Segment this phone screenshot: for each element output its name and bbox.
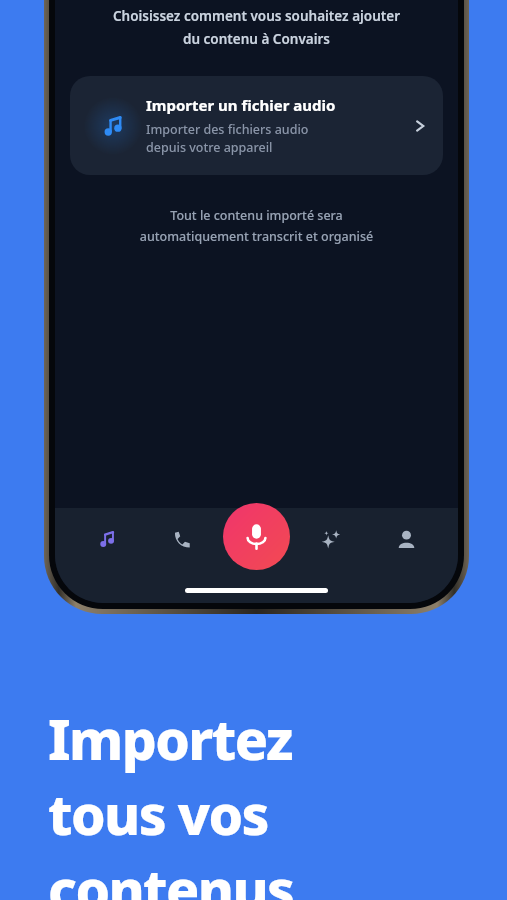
button[interactable]: Importer un fichier audio	[70, 76, 443, 175]
button[interactable]: Calls	[159, 516, 205, 562]
staticText: tous vos	[48, 776, 268, 851]
staticText: contenus	[48, 851, 294, 900]
staticText: Choisissez comment vous souhaitez ajoute…	[65, 7, 448, 48]
staticText: Tout le contenu importé sera automatique…	[69, 207, 444, 245]
button[interactable]: Record	[223, 503, 290, 570]
staticText: Importer des fichiers audio depuis votre…	[146, 121, 309, 156]
button[interactable]: Music	[84, 516, 130, 562]
staticText: Importer un fichier audio	[146, 95, 336, 115]
staticText: Importez	[48, 701, 292, 776]
button[interactable]: Profile	[383, 516, 429, 562]
button[interactable]: Magic	[308, 516, 354, 562]
